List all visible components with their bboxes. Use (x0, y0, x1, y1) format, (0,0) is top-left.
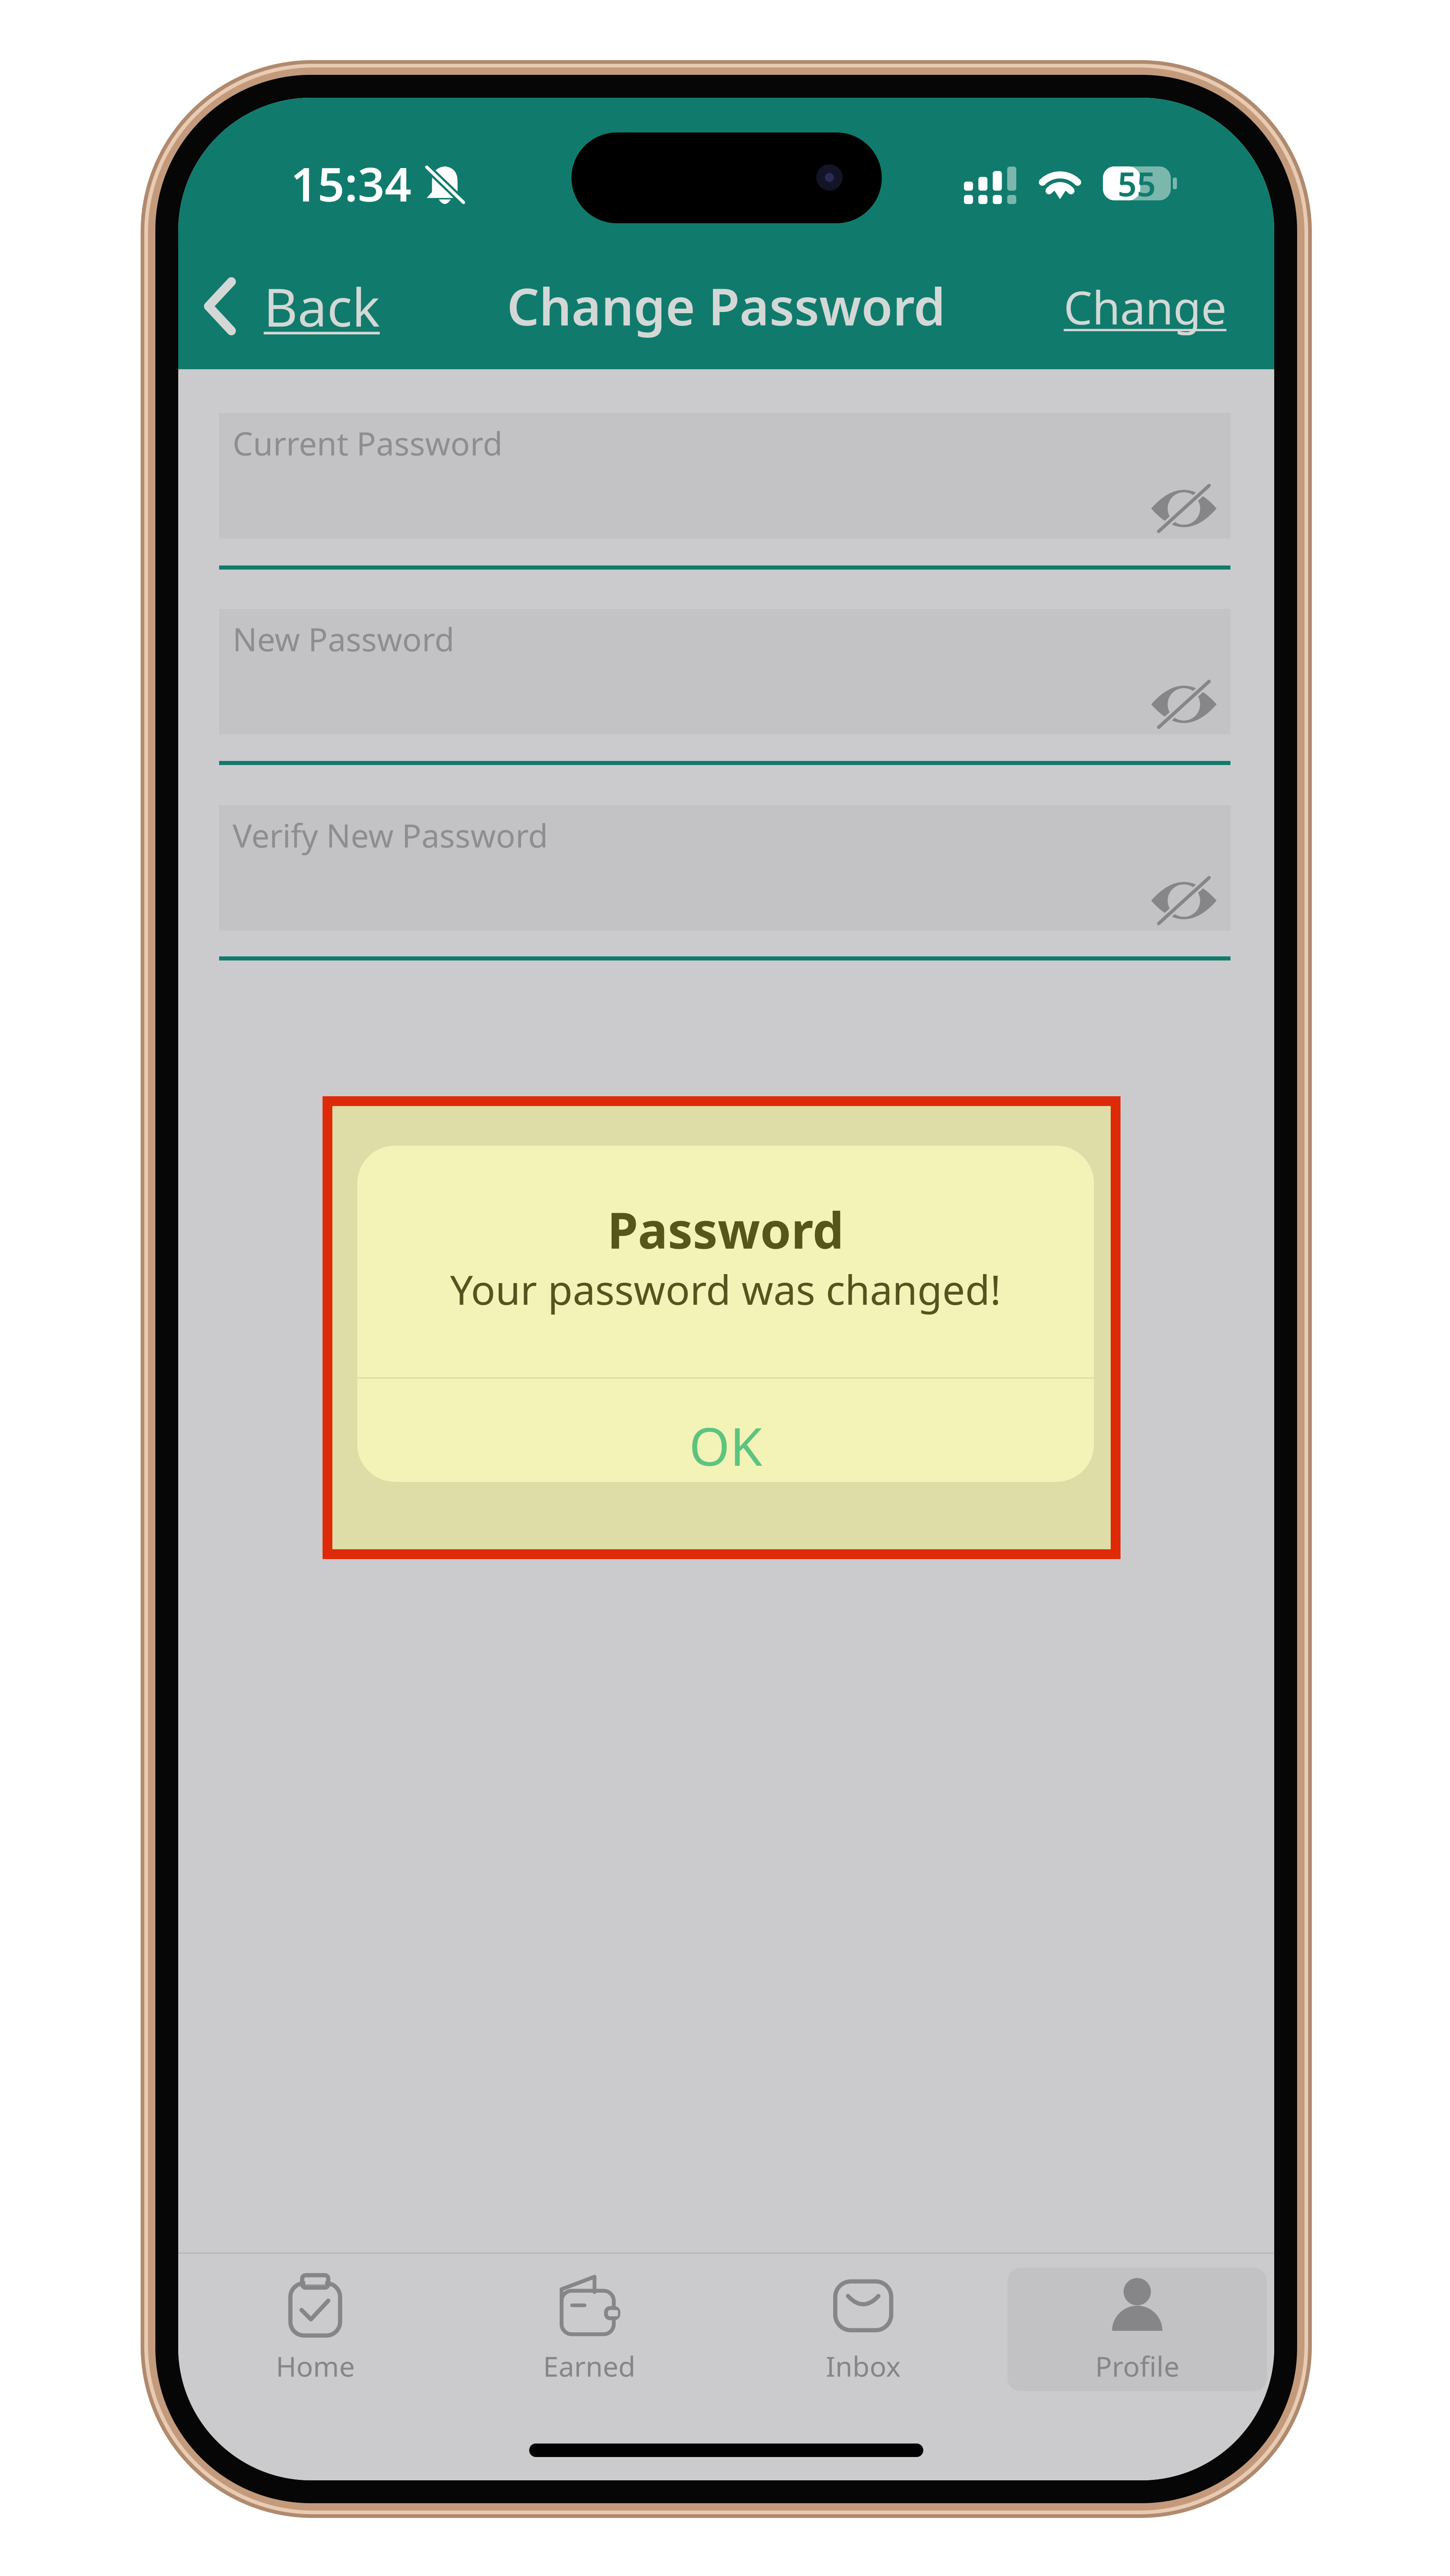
button[interactable]: Show New Password (1141, 669, 1227, 739)
button[interactable]: Home (178, 2268, 452, 2391)
staticText: Inbox (826, 2347, 901, 2384)
button[interactable]: OK (357, 1377, 1094, 1482)
staticText: Home (276, 2347, 355, 2384)
staticText: 55 (1118, 161, 1156, 205)
button[interactable]: Change (1056, 269, 1235, 345)
button[interactable]: Show Verify New Password (1141, 866, 1227, 936)
staticText: Back (264, 272, 380, 341)
staticText: Change Password (507, 272, 946, 340)
button[interactable]: Back (195, 263, 388, 349)
staticText: Verify New Password (233, 814, 548, 856)
staticText: New Password (233, 617, 454, 660)
staticText: Current Password (233, 422, 502, 464)
staticText: Earned (543, 2347, 635, 2384)
staticText: Change (1064, 277, 1226, 337)
staticText: Password (607, 1196, 844, 1262)
staticText: Profile (1095, 2347, 1179, 2384)
staticText: 15:34 (291, 152, 412, 214)
staticText: Your password was changed! (450, 1262, 1001, 1316)
button[interactable]: Earned (452, 2268, 726, 2391)
button[interactable]: Show Current Password (1141, 473, 1227, 543)
button[interactable]: Profile (1000, 2268, 1274, 2391)
staticText: OK (689, 1411, 762, 1480)
button[interactable]: Inbox (726, 2268, 1000, 2391)
